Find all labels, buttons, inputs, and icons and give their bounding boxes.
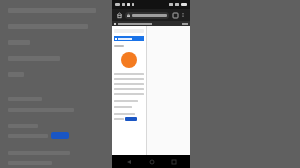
button[interactable]: Home	[146, 156, 157, 167]
button[interactable]	[125, 117, 137, 121]
button[interactable]: More options	[179, 11, 187, 19]
button[interactable]: Home	[115, 11, 123, 19]
button[interactable]	[51, 132, 69, 139]
button[interactable]: Recent apps	[168, 156, 179, 167]
button[interactable]	[125, 12, 169, 19]
button[interactable]: Back	[123, 156, 134, 167]
button[interactable]: Profile	[121, 52, 137, 68]
button[interactable]: Tabs	[171, 11, 179, 19]
button[interactable]	[114, 36, 144, 41]
